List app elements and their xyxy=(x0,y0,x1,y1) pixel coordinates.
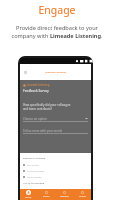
staticText: Choose an option xyxy=(23,117,85,121)
staticText: Rewards xyxy=(60,195,69,198)
button[interactable]: Menu xyxy=(22,69,29,76)
staticText: Provide direct feedback to your company … xyxy=(8,24,106,40)
staticText: Slightly valuable xyxy=(27,176,42,179)
staticText: Tracks xyxy=(43,195,50,198)
staticText: Very valuable xyxy=(27,164,39,167)
staticText: Somewhat valuable xyxy=(27,170,45,173)
staticText: Tell us more with your words xyxy=(23,129,88,133)
button[interactable]: Home xyxy=(20,189,37,200)
button[interactable]: Slightly valuable xyxy=(20,174,91,180)
staticText: Extremely valuable xyxy=(23,156,46,159)
staticText: Limeade Listening xyxy=(27,83,50,87)
button[interactable]: Choose an option xyxy=(23,116,88,122)
button[interactable]: Somewhat valuable xyxy=(20,168,91,174)
staticText: Engage xyxy=(38,3,76,17)
staticText: How specifically did your colleague and … xyxy=(23,103,71,111)
button[interactable]: Profile xyxy=(73,189,91,200)
button[interactable]: Tell us more with your words xyxy=(23,128,88,134)
button[interactable]: Tracks xyxy=(37,189,55,200)
button[interactable]: Rewards xyxy=(55,189,73,200)
staticText: Not at all valuable xyxy=(23,181,45,184)
staticText: Profile xyxy=(79,195,86,198)
staticText: Home xyxy=(25,196,32,199)
staticText: Feedback Survey xyxy=(23,89,49,93)
button[interactable]: Very valuable xyxy=(20,162,91,168)
staticText: Limeade Listening xyxy=(45,70,66,73)
